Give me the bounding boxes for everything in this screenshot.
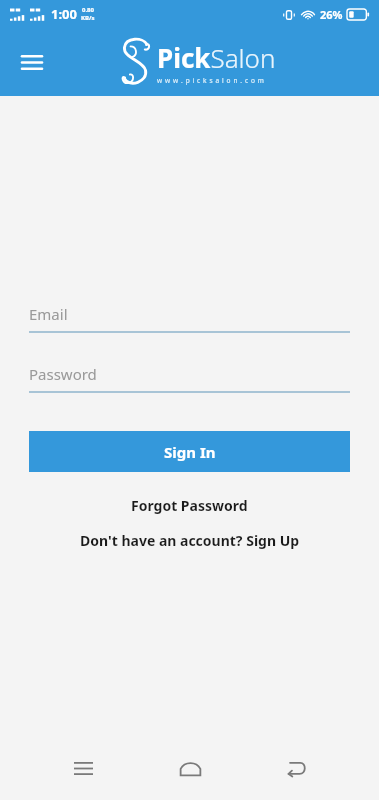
staticText: 1:00 — [51, 5, 77, 23]
staticText: Sign In — [164, 442, 216, 462]
button[interactable]: Forgot Password — [29, 492, 350, 518]
staticText: Password — [29, 364, 97, 384]
button[interactable]: Back — [272, 744, 320, 792]
staticText: Don't have an account? Sign Up — [80, 531, 300, 550]
staticText: Forgot Password — [131, 496, 248, 515]
staticText: PickSalon — [157, 40, 276, 75]
button[interactable]: Don't have an account? Sign Up — [29, 527, 350, 553]
staticText: KB/s — [81, 14, 95, 22]
staticText: 0.80 — [82, 6, 94, 14]
staticText: Email — [29, 304, 68, 324]
staticText: 26% — [320, 7, 343, 22]
button[interactable]: Email — [29, 297, 350, 333]
button[interactable]: Password — [29, 357, 350, 393]
button[interactable]: Open navigation menu — [14, 44, 50, 80]
button[interactable]: Recent apps — [59, 744, 107, 792]
button[interactable]: Home — [166, 744, 214, 792]
staticText: w w w . p i c k s a l o n . c o m — [157, 76, 265, 85]
button[interactable]: Sign In — [29, 431, 350, 472]
